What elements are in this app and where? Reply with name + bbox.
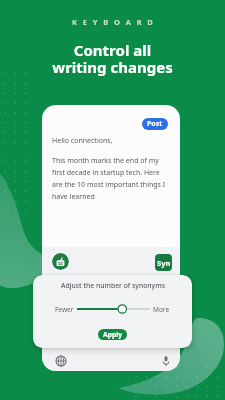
staticText: More [153, 305, 170, 314]
button[interactable]: Apply [98, 329, 127, 340]
button[interactable]: Voice input [160, 355, 172, 367]
button[interactable]: Post [142, 118, 168, 130]
button[interactable]: Assistant [52, 253, 69, 270]
staticText: Control all writing changes [52, 40, 173, 78]
staticText: Post [147, 119, 163, 129]
staticText: Fewer [55, 305, 74, 314]
staticText: Adjust the number of synonyms [61, 281, 165, 290]
staticText: KEYBOARD [72, 17, 159, 27]
button[interactable]: Language [55, 355, 67, 367]
button[interactable]: Syn [155, 254, 172, 271]
staticText: Syn [157, 258, 171, 268]
staticText: Apply [103, 330, 123, 339]
button[interactable]: Synonym slider [77, 303, 150, 315]
staticText: This month marks the end of my first dec… [52, 156, 170, 201]
staticText: Hello connections, [52, 136, 113, 146]
